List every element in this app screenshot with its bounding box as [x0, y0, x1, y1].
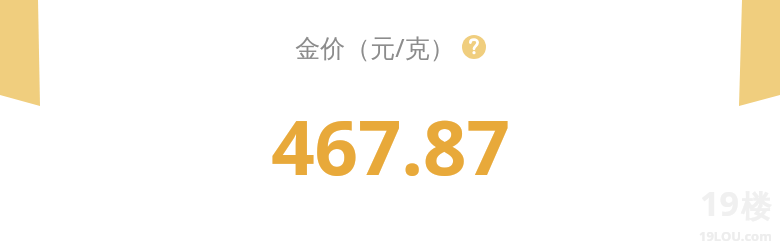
staticText: 楼	[741, 188, 771, 226]
staticText: 金价（元/克）	[295, 30, 455, 64]
button[interactable]: 金价（元/克）	[295, 30, 486, 64]
button[interactable]: 帮助	[462, 35, 486, 59]
staticText: 19	[700, 180, 739, 226]
staticText: 19LOU.com	[699, 227, 772, 245]
button[interactable]: 467.87	[271, 94, 510, 198]
